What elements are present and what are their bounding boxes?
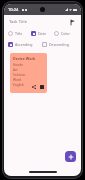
staticText: Act	[13, 68, 18, 72]
button[interactable]: Device Work	[10, 53, 47, 93]
button[interactable]: More options	[40, 85, 44, 89]
button[interactable]: Ascending	[8, 42, 42, 47]
staticText: Color	[61, 31, 71, 36]
staticText: English	[13, 83, 24, 87]
button[interactable]: Add task	[65, 151, 76, 162]
staticText: Word	[13, 78, 22, 82]
button[interactable]: Descending	[42, 42, 77, 47]
button[interactable]: Share	[31, 84, 37, 90]
button[interactable]: Date	[31, 31, 54, 36]
staticText: Date	[38, 31, 46, 36]
staticText: Device Work	[13, 56, 36, 61]
staticText: Ascending	[15, 42, 33, 47]
staticText: Solution	[13, 73, 26, 77]
staticText: Hoode	[13, 63, 23, 67]
button[interactable]: Title	[8, 31, 31, 36]
staticText: Title	[15, 31, 23, 36]
staticText: Descending	[49, 42, 69, 47]
button[interactable]: Flag task	[68, 18, 76, 26]
staticText: 10:24	[8, 7, 19, 12]
button[interactable]: Color	[54, 31, 77, 36]
staticText: Task Title	[9, 19, 68, 25]
